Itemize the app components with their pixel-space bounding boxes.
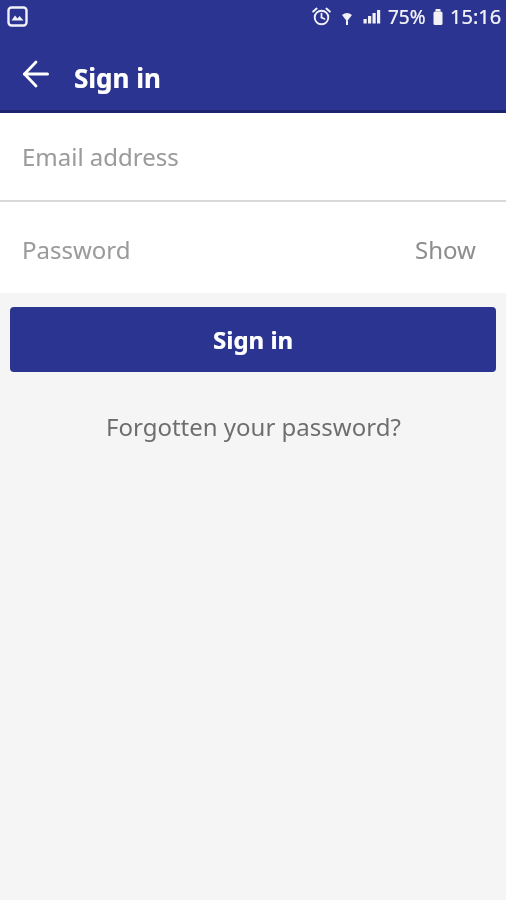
- staticText: 75%: [388, 4, 426, 30]
- button[interactable]: Password: [0, 202, 506, 293]
- staticText: Sign in: [213, 323, 294, 356]
- button[interactable]: Forgotten your password?: [106, 410, 401, 443]
- staticText: 15:16: [450, 3, 502, 30]
- staticText: Password: [22, 233, 415, 266]
- button[interactable]: Show: [415, 233, 476, 266]
- staticText: Email address: [22, 140, 179, 173]
- button[interactable]: [0, 38, 71, 110]
- button[interactable]: Sign in: [10, 307, 496, 372]
- staticText: Sign in: [74, 60, 161, 95]
- button[interactable]: Email address: [0, 113, 506, 200]
